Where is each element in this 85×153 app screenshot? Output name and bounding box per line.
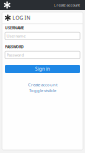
button[interactable]: Toggle visible [29,88,56,93]
button[interactable]: Create account [28,82,57,87]
staticText: Sign in [35,66,50,72]
staticText: Create account [53,2,79,8]
staticText: Toggle visible [29,88,56,93]
button[interactable]: Sign in [5,65,80,73]
staticText: Password [7,52,24,58]
staticText: PASSWORD [5,44,24,49]
button[interactable]: Home [0,0,14,10]
staticText: Create account [28,82,57,87]
button[interactable]: Create account [51,1,82,9]
staticText: Username [7,33,26,39]
staticText: USERNAME [5,25,24,30]
staticText: LOG IN [13,14,31,21]
